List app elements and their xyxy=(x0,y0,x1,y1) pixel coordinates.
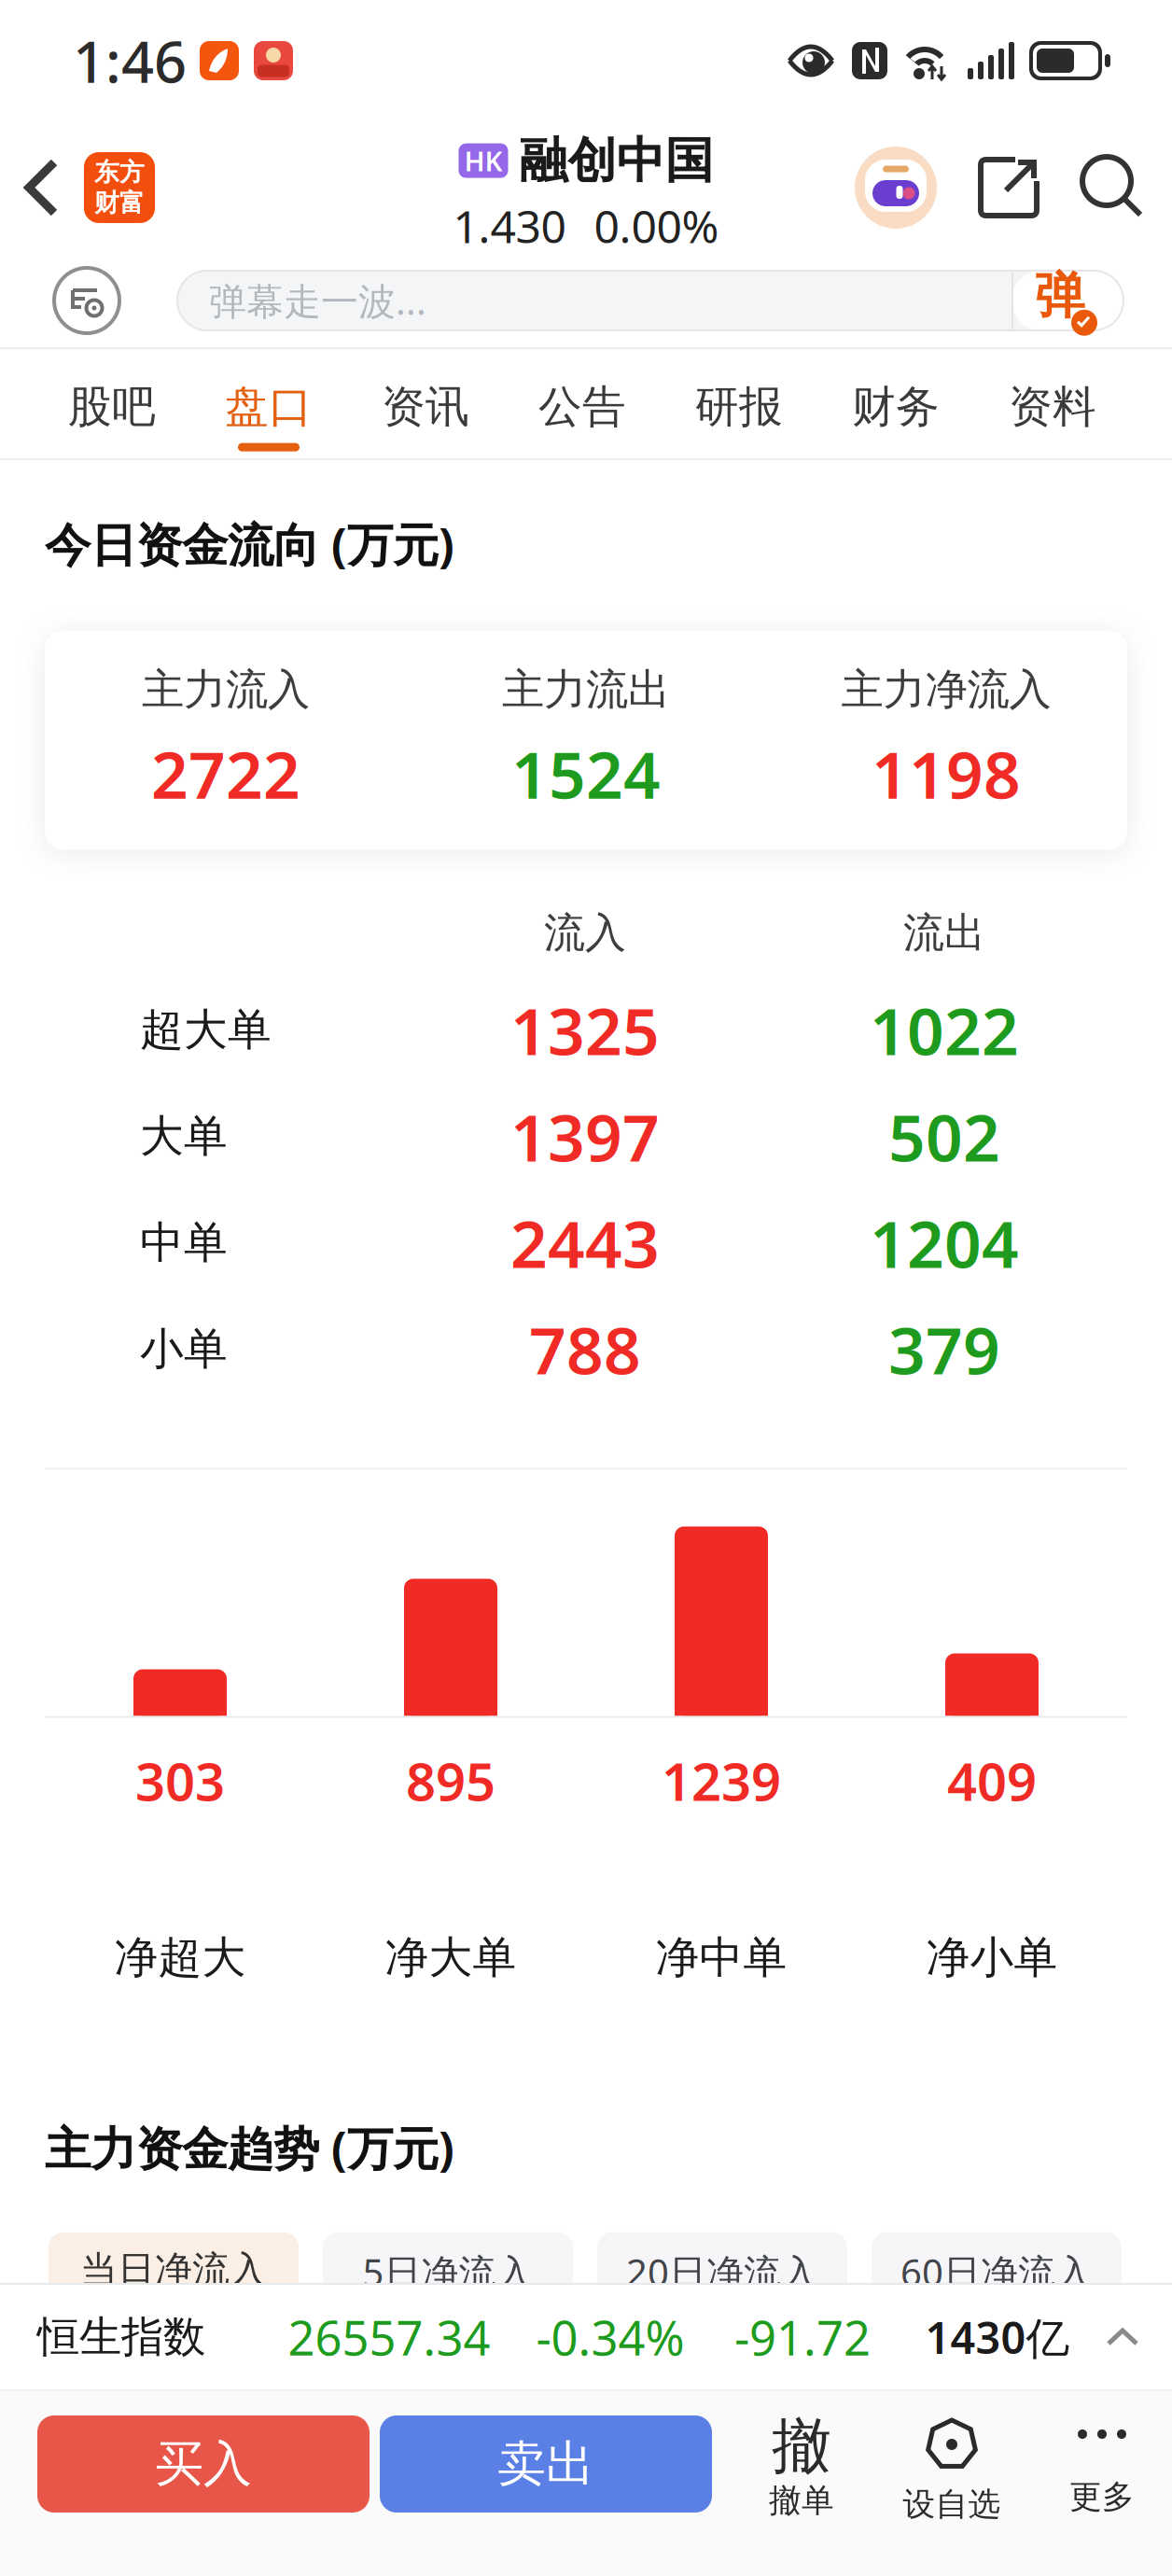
button[interactable]: 研报 xyxy=(661,380,817,451)
staticText: 弹幕走一波... xyxy=(209,276,426,325)
staticText: 撤单 xyxy=(769,2481,834,2521)
staticText: 设自选 xyxy=(903,2485,1001,2524)
button[interactable] xyxy=(1039,157,1172,218)
staticText: 盘口 xyxy=(225,380,313,434)
button[interactable]: 财务 xyxy=(817,380,974,451)
staticText: 公告 xyxy=(538,380,626,434)
button[interactable]: 资讯 xyxy=(347,380,504,451)
staticText: 26557.34 xyxy=(288,2306,490,2369)
button[interactable]: 股吧 xyxy=(34,380,190,451)
staticText: 财务 xyxy=(852,380,940,434)
staticText: 撤 xyxy=(772,2410,831,2483)
staticText: 1022 xyxy=(870,987,1019,1073)
button[interactable]: 卖出 xyxy=(370,2415,712,2513)
staticText: 研报 xyxy=(695,380,783,434)
staticText: 卖出 xyxy=(497,2434,594,2494)
staticText: 1397 xyxy=(510,1093,660,1179)
staticText: 2443 xyxy=(510,1200,660,1286)
staticText: 1325 xyxy=(510,987,660,1073)
button[interactable]: 60日净流入 xyxy=(872,2232,1122,2346)
button[interactable] xyxy=(855,147,937,229)
staticText: 1198 xyxy=(872,731,1021,817)
staticText: 60日净流入 xyxy=(900,2247,1093,2297)
button[interactable]: 撤 xyxy=(750,2415,853,2521)
staticText: 弹 xyxy=(1035,265,1084,326)
staticText: 5日净流入 xyxy=(363,2247,533,2297)
staticText: 502 xyxy=(888,1093,1000,1179)
staticText: 资讯 xyxy=(382,380,469,434)
staticText: 主力资金趋势 (万元) xyxy=(45,2117,454,2178)
button[interactable]: 更多 xyxy=(1051,2415,1153,2517)
staticText: 恒生指数 xyxy=(37,2311,205,2363)
staticText: 超大单 xyxy=(140,1003,272,1057)
button[interactable]: 弹幕走一波... xyxy=(119,271,1172,330)
button[interactable]: 东方 xyxy=(60,152,155,223)
staticText: 895 xyxy=(406,1746,495,1815)
staticText: 20日净流入 xyxy=(626,2247,818,2297)
staticText: 主力流入 xyxy=(142,664,310,716)
staticText: 0.00% xyxy=(594,196,719,256)
button[interactable]: 公告 xyxy=(504,380,661,451)
staticText: 资料 xyxy=(1009,380,1096,434)
button[interactable]: 买入 xyxy=(37,2415,370,2513)
staticText: 融创中国 xyxy=(519,131,713,190)
staticText: -91.72 xyxy=(734,2306,871,2369)
button[interactable]: 资料 xyxy=(974,380,1131,451)
staticText: 净小单 xyxy=(926,1931,1058,1984)
staticText: 财富 xyxy=(94,188,145,218)
staticText: 1239 xyxy=(662,1746,781,1815)
staticText: 中单 xyxy=(140,1216,228,1270)
staticText: 1524 xyxy=(511,731,661,817)
staticText: 买入 xyxy=(155,2434,252,2494)
button[interactable]: 20日净流入 xyxy=(597,2232,847,2346)
staticText: 股吧 xyxy=(68,380,156,434)
button[interactable] xyxy=(937,157,1039,218)
button[interactable]: 恒生指数 xyxy=(0,2285,1172,2389)
staticText: 1430亿 xyxy=(925,2308,1070,2366)
staticText: 379 xyxy=(888,1306,1000,1392)
staticText: 小单 xyxy=(140,1322,228,1376)
button[interactable]: 5日净流入 xyxy=(323,2232,573,2346)
staticText: 流入 xyxy=(544,908,626,958)
staticText: -0.34% xyxy=(536,2306,684,2369)
staticText: 主力流出 xyxy=(502,664,670,716)
staticText: 1:46 xyxy=(73,23,187,99)
staticText: 2722 xyxy=(151,731,300,817)
button[interactable]: 设自选 xyxy=(891,2415,1012,2524)
staticText: 净大单 xyxy=(385,1931,516,1984)
staticText: HK xyxy=(464,143,502,179)
staticText: 303 xyxy=(135,1746,225,1815)
staticText: 流出 xyxy=(903,908,985,958)
staticText: 净中单 xyxy=(656,1931,787,1984)
staticText: 更多 xyxy=(1069,2477,1135,2517)
button[interactable] xyxy=(0,268,119,333)
staticText: 788 xyxy=(529,1306,641,1392)
staticText: 当日净流入 xyxy=(80,2247,267,2293)
staticText: 东方 xyxy=(94,157,145,188)
staticText: 1204 xyxy=(870,1200,1019,1286)
staticText: 409 xyxy=(947,1746,1037,1815)
staticText: 净超大 xyxy=(114,1931,246,1984)
staticText: 大单 xyxy=(140,1110,228,1163)
button[interactable] xyxy=(0,159,60,217)
button[interactable]: 盘口 xyxy=(190,380,347,451)
staticText: 主力净流入 xyxy=(841,664,1051,716)
button[interactable]: 当日净流入 xyxy=(49,2232,299,2346)
staticText: 今日资金流向 (万元) xyxy=(45,513,454,574)
staticText: 1.430 xyxy=(453,196,566,256)
